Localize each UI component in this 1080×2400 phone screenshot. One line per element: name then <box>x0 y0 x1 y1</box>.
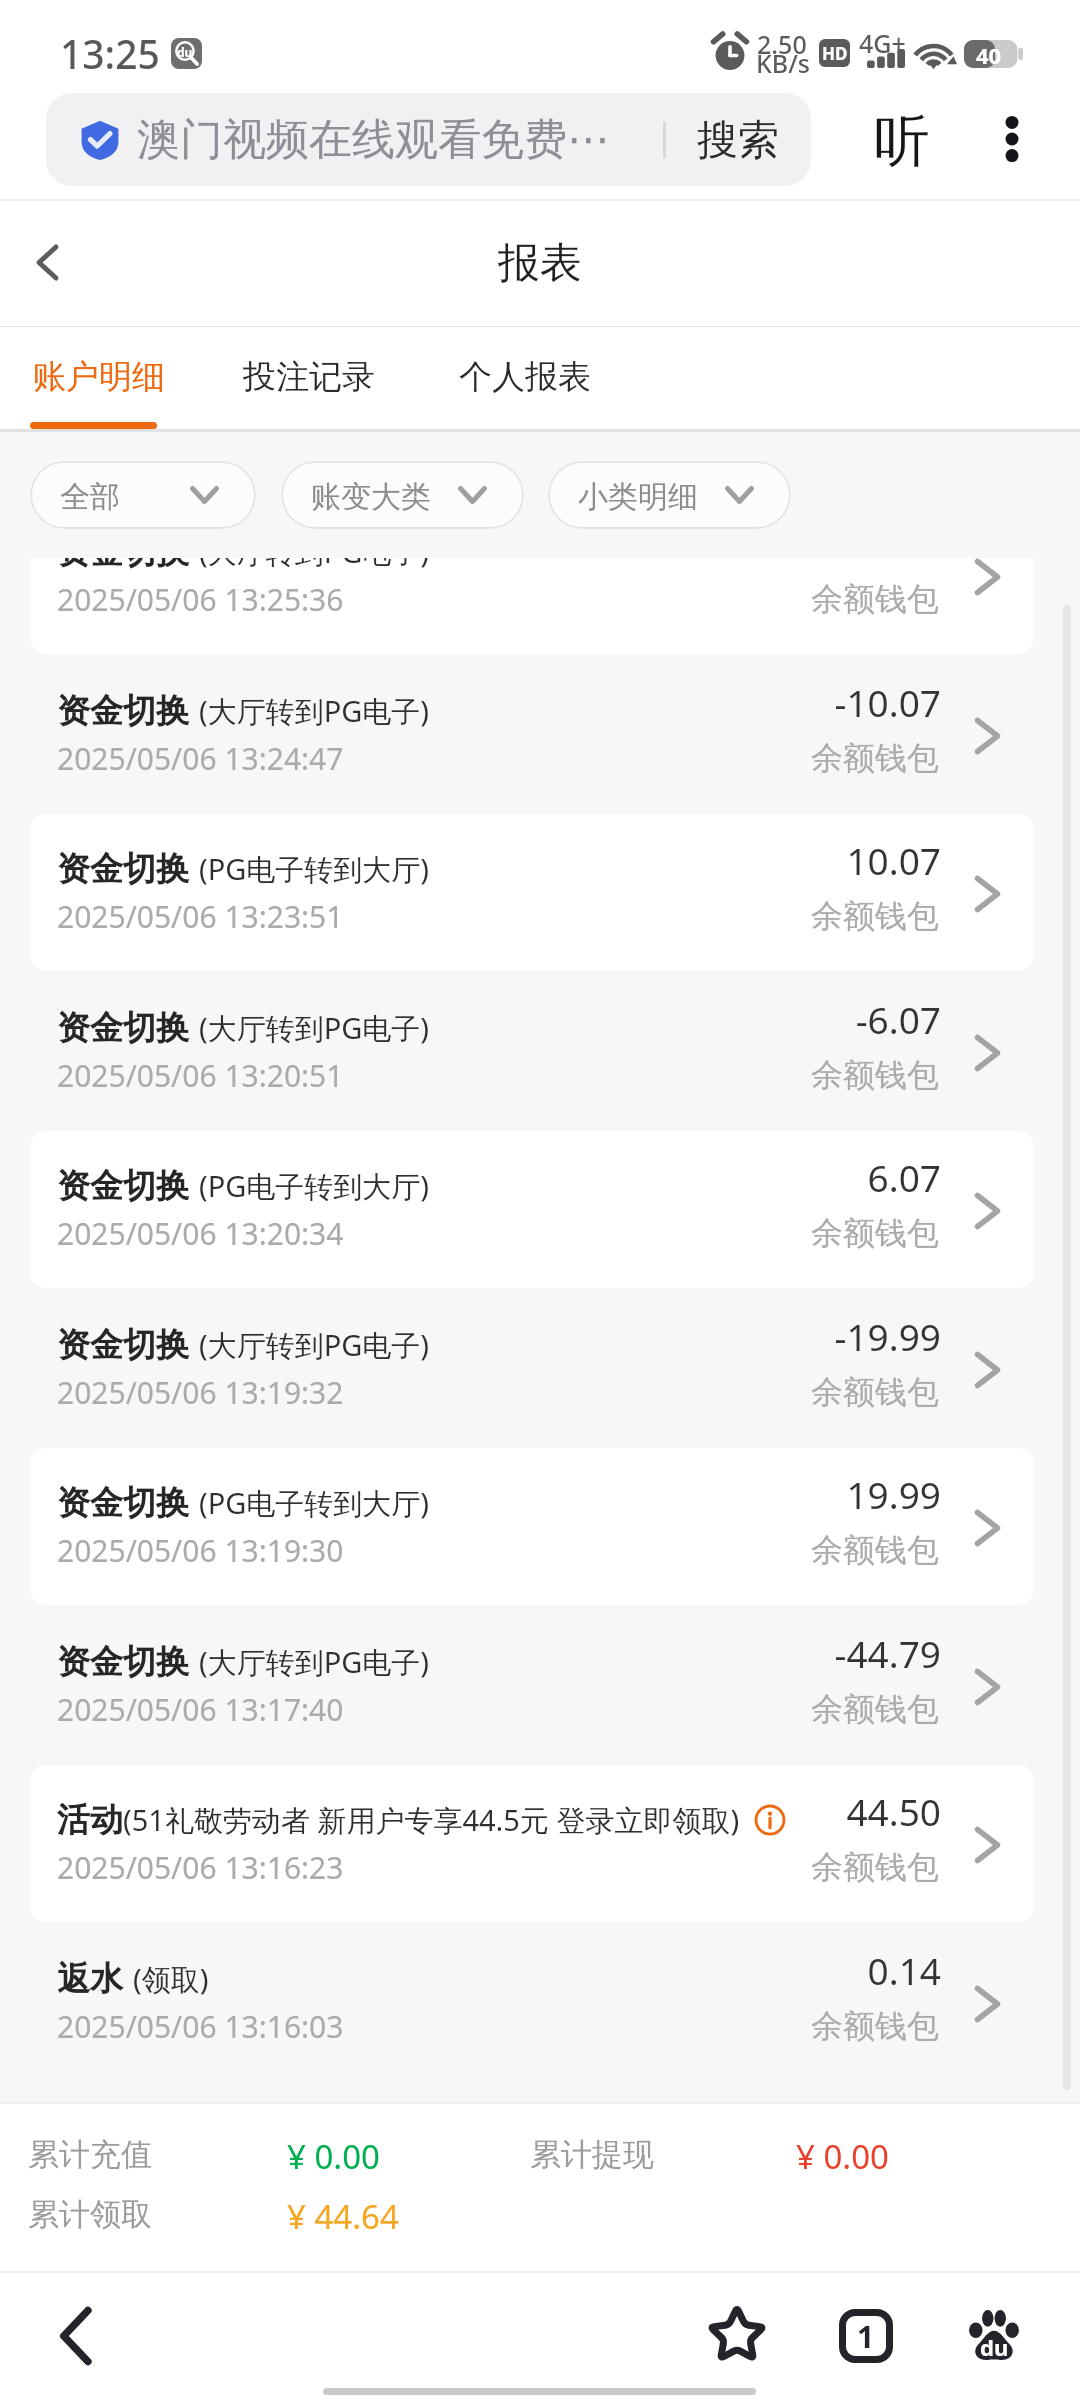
staticText: 2025/05/06 13:24:47 <box>57 738 344 779</box>
staticText: 听 <box>874 106 930 177</box>
button[interactable]: 个人报表 <box>435 327 607 429</box>
button[interactable]: Favorites <box>690 2287 784 2381</box>
staticText: 余额钱包 <box>639 1372 939 1412</box>
staticText: 账户明细 <box>33 356 165 398</box>
staticText: 澳门视频在线观看免费⋯ <box>137 113 610 167</box>
staticText: (领取) <box>133 1959 209 1999</box>
staticText: 余额钱包 <box>639 1847 939 1887</box>
button[interactable]: 返水 <box>0 1927 1080 2086</box>
button[interactable]: 澳门视频在线观看免费⋯ <box>46 93 811 186</box>
staticText: (大厅转到PG电子) <box>199 1642 430 1682</box>
button[interactable]: 资金切换 <box>0 1610 1080 1769</box>
staticText: 报表 <box>498 237 582 290</box>
staticText: (大厅转到PG电子) <box>199 558 430 572</box>
staticText: (PG电子转到大厅) <box>199 1166 430 1206</box>
staticText: 2.50 <box>757 27 807 61</box>
staticText: 余额钱包 <box>639 1055 939 1095</box>
staticText: ¥ 0.00 <box>796 2134 889 2179</box>
staticText: (PG电子转到大厅) <box>199 849 430 889</box>
staticText: -6.07 <box>641 994 941 1044</box>
staticText: (大厅转到PG电子) <box>199 1325 430 1365</box>
staticText: 返水 <box>57 1958 123 2000</box>
staticText: 2025/05/06 13:23:51 <box>57 896 344 937</box>
staticText: 余额钱包 <box>639 579 939 619</box>
staticText: 资金切换 <box>57 848 189 890</box>
button[interactable]: 资金切换 <box>0 817 1080 976</box>
staticText: 余额钱包 <box>639 1689 939 1729</box>
staticText: 余额钱包 <box>639 1530 939 1570</box>
button[interactable]: 资金切换 <box>0 976 1080 1135</box>
staticText: 个人报表 <box>459 356 591 398</box>
button[interactable]: 账变大类 <box>281 461 524 529</box>
staticText: -44.79 <box>641 1628 941 1678</box>
staticText: 累计领取 <box>28 2195 152 2234</box>
staticText: 资金切换 <box>57 1482 189 1524</box>
button[interactable]: Baidu home <box>947 2288 1041 2382</box>
staticText: 累计充值 <box>28 2135 152 2174</box>
staticText: 余额钱包 <box>639 2006 939 2046</box>
staticText: 搜索 <box>697 115 779 167</box>
staticText: 投注记录 <box>243 356 375 398</box>
staticText: 2025/05/06 13:20:51 <box>57 1055 344 1096</box>
staticText: 资金切换 <box>57 1007 189 1049</box>
button[interactable]: 资金切换 <box>0 558 1080 659</box>
button[interactable]: More options <box>968 95 1056 183</box>
staticText: 活动 <box>57 1799 123 1841</box>
staticText: (51礼敬劳动者 新用户专享44.5元 登录立即领取) <box>123 1800 740 1840</box>
button[interactable]: 活动 <box>0 1768 1080 1927</box>
staticText: 2025/05/06 13:16:23 <box>57 1847 344 1888</box>
staticText: KB/s <box>756 46 810 80</box>
staticText: du <box>980 2332 1009 2362</box>
staticText: 4G+ <box>859 26 906 60</box>
staticText: HD <box>822 42 848 65</box>
staticText: 余额钱包 <box>639 738 939 778</box>
staticText: ¥ 0.00 <box>287 2134 380 2179</box>
staticText: 资金切换 <box>57 558 189 573</box>
staticText: (大厅转到PG电子) <box>199 1008 430 1048</box>
staticText: du <box>177 44 193 60</box>
staticText: 余额钱包 <box>639 896 939 936</box>
staticText: 13:25 <box>60 27 160 80</box>
staticText: 2025/05/06 13:20:34 <box>57 1213 344 1254</box>
staticText: -10.07 <box>641 677 941 727</box>
staticText: 小类明细 <box>578 478 698 516</box>
staticText: ¥ 44.64 <box>287 2194 399 2239</box>
staticText: 1 <box>857 2316 875 2357</box>
staticText: 资金切换 <box>57 1165 189 1207</box>
button[interactable]: 全部 <box>30 461 256 529</box>
button[interactable]: 小类明细 <box>548 461 791 529</box>
staticText: -19.99 <box>641 1311 941 1361</box>
staticText: 资金切换 <box>57 1324 189 1366</box>
button[interactable]: 账户明细 <box>9 327 181 429</box>
staticText: 19.99 <box>641 1469 941 1519</box>
staticText: 资金切换 <box>57 690 189 732</box>
button[interactable]: 资金切换 <box>0 1293 1080 1452</box>
staticText: 44.50 <box>641 1786 941 1836</box>
button[interactable]: 资金切换 <box>0 1134 1080 1293</box>
staticText: 累计提现 <box>530 2135 654 2174</box>
staticText: 40 <box>976 40 1002 68</box>
staticText: 2025/05/06 13:25:36 <box>57 579 344 620</box>
staticText: 资金切换 <box>57 1641 189 1683</box>
button[interactable]: Tabs <box>819 2289 913 2383</box>
button[interactable]: 资金切换 <box>0 659 1080 818</box>
button[interactable]: 投注记录 <box>219 327 391 429</box>
staticText: 2025/05/06 13:19:32 <box>57 1372 344 1413</box>
staticText: 6.07 <box>641 1152 941 1202</box>
staticText: 0.14 <box>641 1945 941 1995</box>
button[interactable]: Back <box>0 203 92 295</box>
staticText: 2025/05/06 13:17:40 <box>57 1689 344 1730</box>
staticText: 2025/05/06 13:16:03 <box>57 2006 344 2047</box>
staticText: 账变大类 <box>311 478 431 516</box>
staticText: 2025/05/06 13:19:30 <box>57 1530 344 1571</box>
staticText: 10.07 <box>641 835 941 885</box>
button[interactable]: 听 <box>858 97 946 185</box>
button[interactable]: 资金切换 <box>0 1451 1080 1610</box>
button[interactable]: Back <box>31 2291 121 2381</box>
staticText: (大厅转到PG电子) <box>199 691 430 731</box>
staticText: 余额钱包 <box>639 1213 939 1253</box>
staticText: 全部 <box>60 478 120 516</box>
staticText: (PG电子转到大厅) <box>199 1483 430 1523</box>
